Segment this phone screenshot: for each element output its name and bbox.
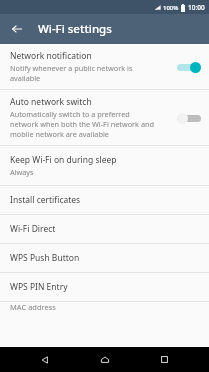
button[interactable]: Install certificates — [0, 186, 209, 214]
staticText: MAC address — [10, 302, 56, 312]
button[interactable]: WPS PIN Entry — [0, 273, 209, 301]
staticText: Keep Wi-Fi on during sleep — [10, 154, 117, 166]
staticText: 10:00 — [188, 3, 205, 12]
staticText: Network notification — [10, 50, 92, 62]
button[interactable]: Keep Wi-Fi on during sleep — [0, 146, 209, 185]
button[interactable]: Toggle off — [177, 112, 201, 124]
staticText: Wi-Fi Direct — [10, 223, 56, 235]
staticText: 100% — [163, 4, 179, 12]
button[interactable]: Back — [7, 19, 27, 39]
button[interactable]: Wi-Fi Direct — [0, 215, 209, 243]
button[interactable]: Auto network switch — [0, 90, 209, 145]
button[interactable]: Back — [30, 347, 60, 372]
staticText: Notify whenever a public network is avai… — [10, 63, 133, 83]
staticText: Auto network switch — [10, 96, 92, 108]
staticText: Install certificates — [10, 194, 81, 206]
staticText: Always — [10, 167, 34, 177]
button[interactable]: Toggle on — [177, 61, 201, 73]
staticText: WPS Push Button — [10, 252, 80, 264]
staticText: Wi-Fi settings — [38, 21, 112, 37]
button[interactable]: Recent apps — [149, 347, 179, 372]
button[interactable]: WPS Push Button — [0, 244, 209, 272]
staticText: WPS PIN Entry — [10, 281, 68, 293]
button[interactable]: Home — [90, 347, 120, 372]
button[interactable]: Network notification — [0, 44, 209, 89]
staticText: Automatically switch to a preferred netw… — [10, 109, 154, 139]
